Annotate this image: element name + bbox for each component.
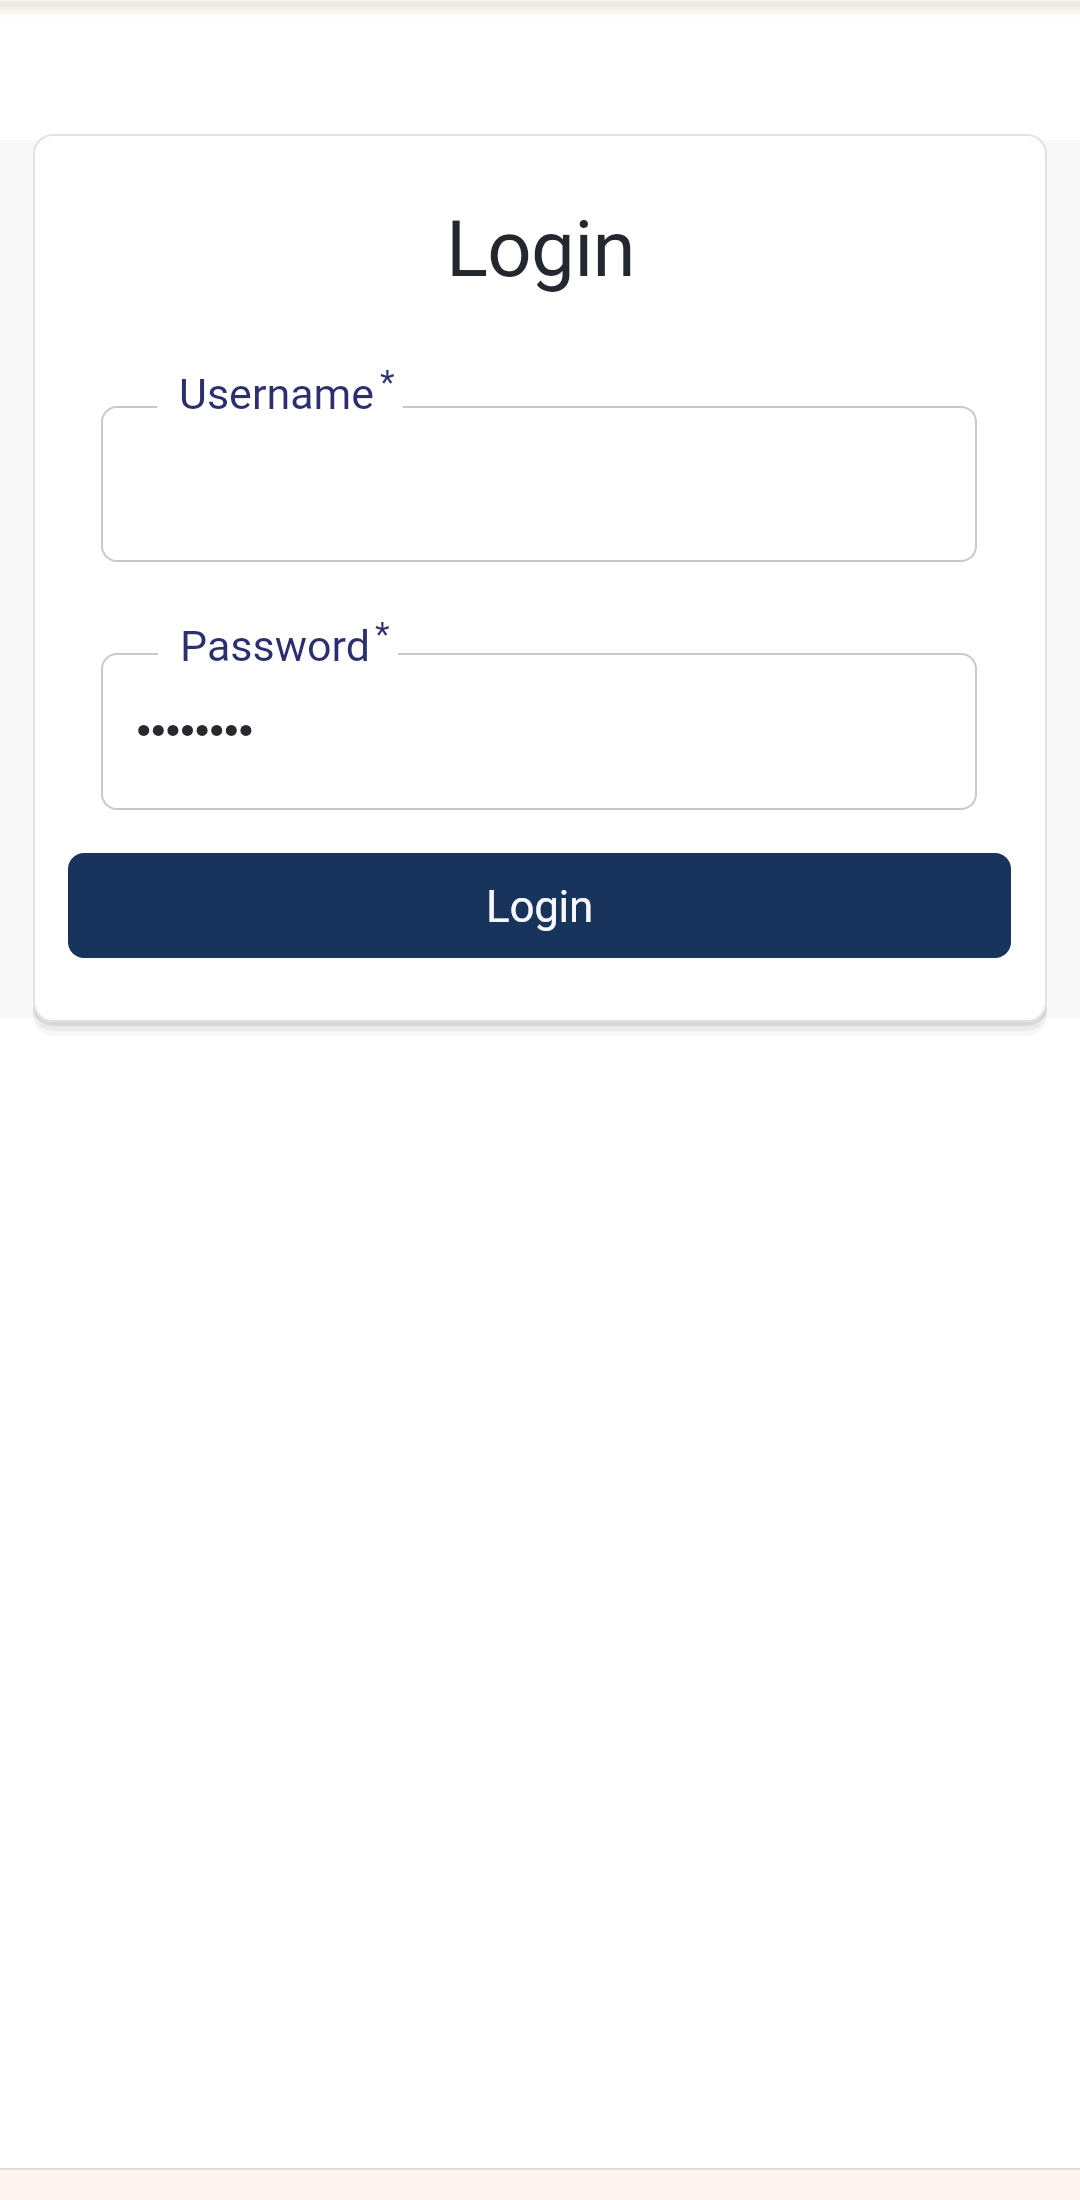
staticText: * xyxy=(375,614,390,654)
staticText: Login xyxy=(486,881,593,933)
button[interactable]: Login xyxy=(68,853,1011,958)
staticText: Password xyxy=(180,621,370,671)
staticText: * xyxy=(380,362,395,402)
staticText: Login xyxy=(446,204,635,295)
staticText: Username xyxy=(179,369,375,419)
